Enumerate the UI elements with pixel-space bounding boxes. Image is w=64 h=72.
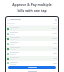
- button[interactable]: [6, 51, 58, 56]
- button[interactable]: [6, 46, 58, 51]
- button[interactable]: [6, 61, 58, 65]
- staticText: Approve & Pay multiple: [0, 2, 64, 7]
- button[interactable]: [6, 36, 58, 41]
- button[interactable]: [8, 66, 56, 69]
- button[interactable]: [6, 31, 58, 36]
- button[interactable]: [6, 56, 58, 61]
- button[interactable]: [6, 41, 58, 46]
- button[interactable]: [6, 26, 58, 31]
- staticText: bills with one tap: [0, 8, 64, 13]
